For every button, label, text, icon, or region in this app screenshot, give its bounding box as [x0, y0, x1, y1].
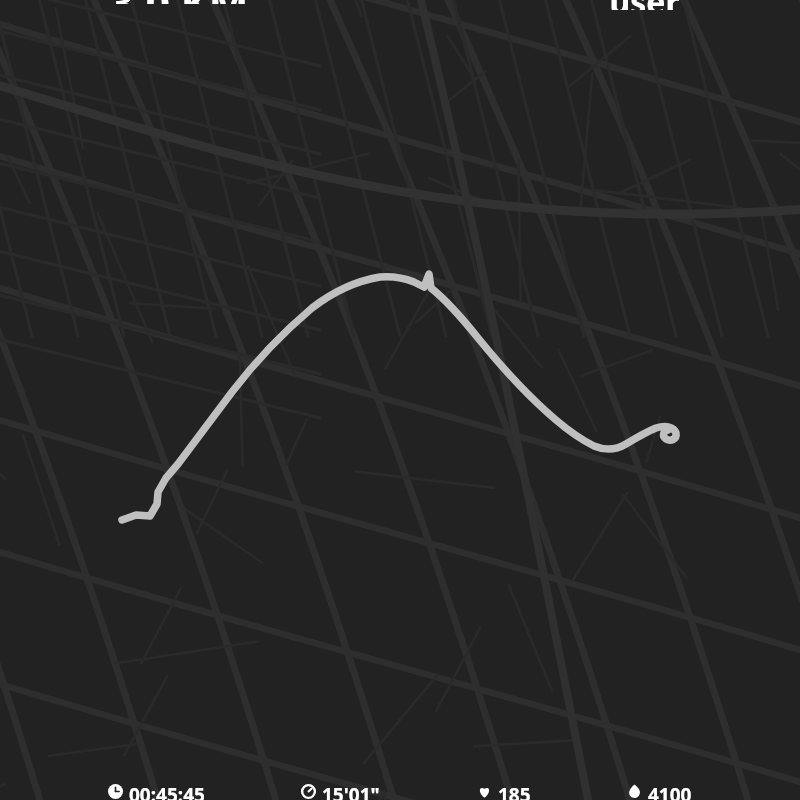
- staticText: 15'01": [322, 782, 380, 800]
- staticText: 185: [498, 782, 531, 800]
- staticText: 4100: [648, 782, 692, 800]
- staticText: , user: [592, 0, 680, 10]
- staticText: 3.0 KM: [110, 0, 249, 4]
- staticText: 00:45:45: [129, 782, 205, 800]
- button[interactable]: Heart rate: [475, 782, 533, 800]
- button[interactable]: Average pace: [299, 782, 382, 800]
- button[interactable]: Duration: [106, 782, 207, 800]
- button[interactable]: Calories: [625, 782, 694, 800]
